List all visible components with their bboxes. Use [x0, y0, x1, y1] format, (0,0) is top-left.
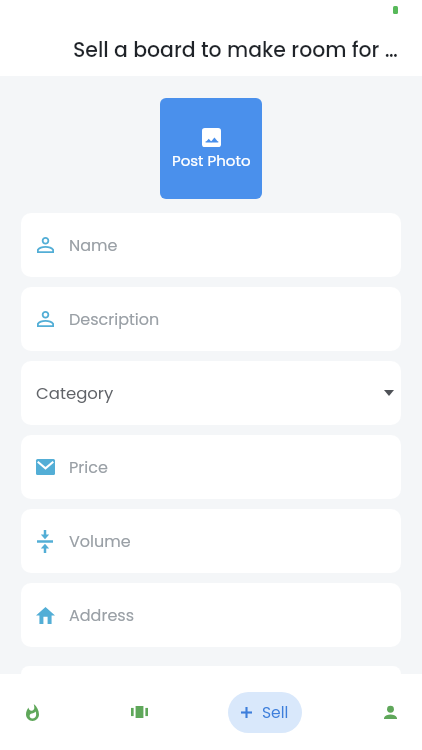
- staticText: Name: [69, 234, 118, 256]
- staticText: Sell a board to make room for …: [73, 36, 404, 65]
- button[interactable]: Category: [21, 361, 401, 425]
- staticText: Description: [69, 308, 160, 330]
- staticText: Price: [69, 456, 108, 478]
- button[interactable]: Volume: [21, 509, 401, 573]
- staticText: Category: [36, 382, 114, 405]
- button[interactable]: Browse: [119, 689, 159, 735]
- staticText: Sell: [262, 702, 289, 724]
- button[interactable]: Name: [21, 213, 401, 277]
- button[interactable]: Address: [21, 583, 401, 647]
- button[interactable]: Profile: [370, 689, 410, 735]
- staticText: Post Photo: [172, 150, 251, 171]
- button[interactable]: Post Photo: [160, 98, 262, 199]
- staticText: Address: [69, 604, 135, 626]
- button[interactable]: Sell: [228, 692, 302, 733]
- staticText: Volume: [69, 530, 131, 552]
- button[interactable]: Description: [21, 287, 401, 351]
- button[interactable]: Price: [21, 435, 401, 499]
- button[interactable]: Trending: [12, 689, 52, 735]
